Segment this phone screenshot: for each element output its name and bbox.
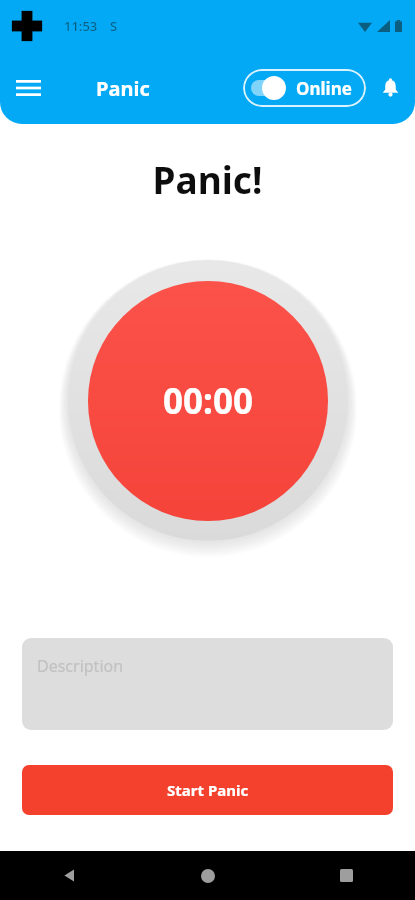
- staticText: Panic!: [0, 154, 415, 204]
- button[interactable]: Home: [139, 851, 277, 900]
- staticText: S: [110, 17, 118, 35]
- button[interactable]: Notifications: [366, 64, 415, 113]
- staticText: 00:00: [163, 377, 253, 425]
- button[interactable]: Recents: [277, 851, 415, 900]
- staticText: 11:53: [64, 17, 98, 35]
- staticText: Online: [296, 77, 352, 100]
- button[interactable]: Panic timer button: [62, 255, 354, 547]
- staticText: Panic: [96, 75, 150, 102]
- button[interactable]: Menu: [0, 60, 56, 116]
- button[interactable]: Start Panic: [22, 765, 393, 815]
- button[interactable]: Back: [0, 851, 139, 900]
- staticText: Description: [37, 655, 124, 677]
- staticText: Start Panic: [167, 780, 249, 800]
- button[interactable]: Online: [243, 69, 366, 107]
